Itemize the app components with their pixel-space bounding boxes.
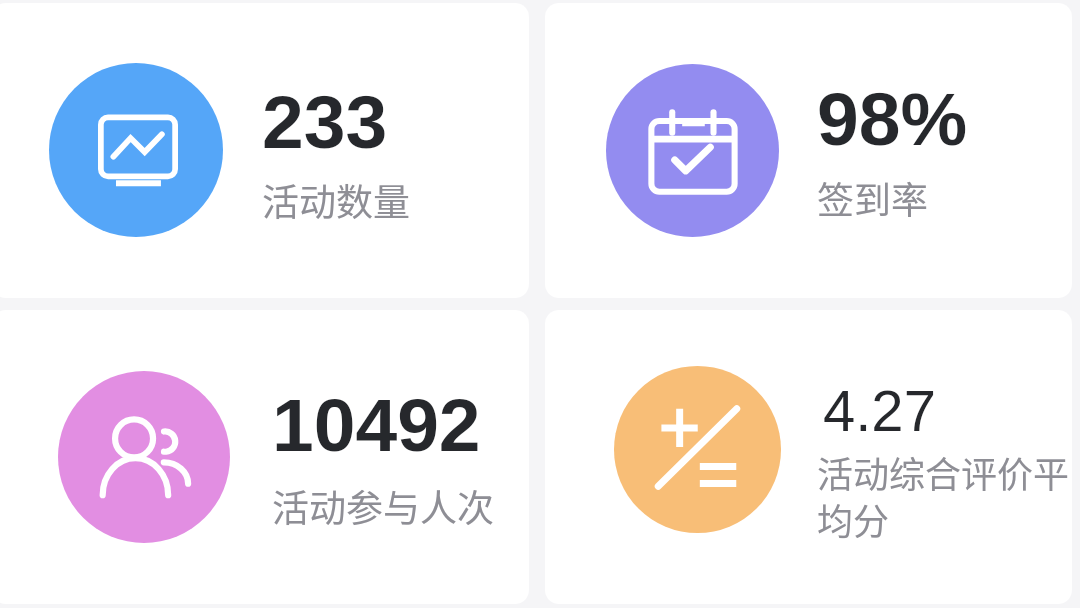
button[interactable]: 活动参与人次 10492 xyxy=(0,310,529,604)
button[interactable]: 签到率 98% xyxy=(545,3,1072,298)
other: 活动参与人次 xyxy=(58,371,230,543)
other: 活动数量 xyxy=(49,63,223,237)
staticText: 233 xyxy=(262,80,388,164)
staticText: 活动参与人次 xyxy=(272,479,494,533)
button[interactable]: 活动数量 233 xyxy=(0,3,529,298)
button[interactable]: 活动综合评价平均分 4.27 xyxy=(545,310,1072,604)
staticText: 签到率 xyxy=(817,171,928,225)
other: 签到率 xyxy=(606,64,779,237)
other: 活动综合评价平均分 xyxy=(614,366,781,533)
staticText: 10492 xyxy=(272,383,481,467)
staticText: 活动综合评价平均分 xyxy=(817,446,1072,546)
staticText: 4.27 xyxy=(823,378,936,443)
staticText: 98% xyxy=(817,77,968,161)
staticText: 活动数量 xyxy=(262,173,410,227)
